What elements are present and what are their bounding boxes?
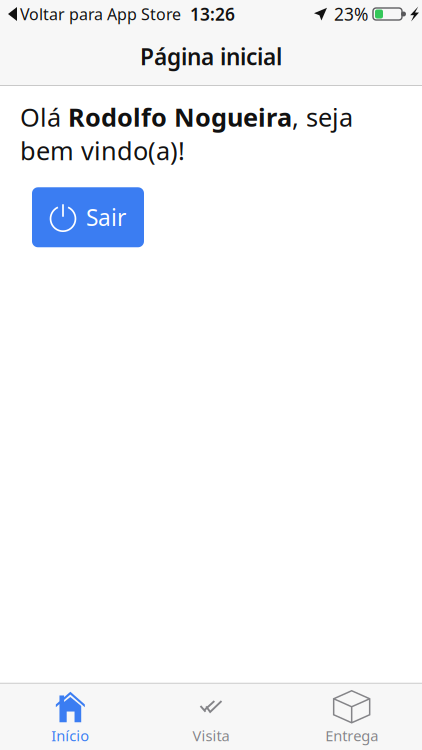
- staticText: Início: [51, 726, 89, 745]
- button[interactable]: Visita: [141, 684, 281, 750]
- staticText: Visita: [192, 726, 229, 745]
- button[interactable]: Entrega: [281, 684, 422, 750]
- staticText: Entrega: [325, 726, 378, 745]
- button[interactable]: Início: [0, 684, 141, 750]
- button[interactable]: Sair: [32, 187, 144, 247]
- button[interactable]: Voltar para App Store: [7, 3, 181, 25]
- staticText: Página inicial: [140, 41, 282, 71]
- staticText: 13:26: [190, 2, 235, 25]
- staticText: 23%: [334, 2, 368, 25]
- staticText: Voltar para App Store: [20, 3, 181, 25]
- staticText: Sair: [86, 202, 126, 232]
- staticText: Olá Rodolfo Nogueira, seja bem vindo(a)!: [20, 100, 353, 167]
